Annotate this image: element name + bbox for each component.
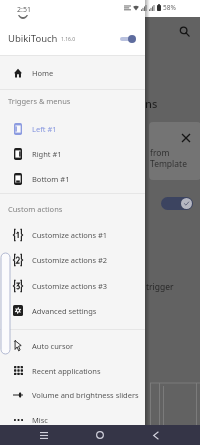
button[interactable] — [161, 197, 193, 210]
staticText: Left #1 — [32, 124, 57, 134]
button[interactable]: Auto cursor — [0, 333, 145, 358]
staticText: Home — [32, 68, 54, 78]
staticText: Recent applications — [32, 366, 101, 376]
button[interactable]: Close — [179, 131, 192, 144]
button[interactable]: Volume and brightness sliders — [0, 382, 145, 407]
staticText: Auto cursor — [32, 341, 74, 351]
button[interactable]: Customize actions #2 — [0, 247, 145, 272]
button[interactable]: Left #1 — [0, 116, 145, 141]
staticText: Customize actions #2 — [32, 255, 108, 265]
staticText: Custom actions — [8, 204, 63, 214]
button[interactable]: Misc — [0, 407, 145, 432]
button[interactable]: Advanced settings — [0, 298, 145, 323]
button[interactable]: Home — [0, 60, 145, 85]
button[interactable]: Search — [176, 23, 192, 39]
staticText: Volume and brightness sliders — [32, 390, 139, 400]
button[interactable]: Home — [90, 425, 110, 445]
button[interactable]: Close — [149, 122, 200, 180]
button[interactable]: Recent applications — [0, 358, 145, 383]
staticText: from Template — [150, 147, 187, 169]
staticText: Right #1 — [32, 149, 62, 159]
button[interactable]: Recent apps — [34, 425, 54, 445]
staticText: UbikiTouch — [8, 32, 58, 45]
staticText: Customize actions #1 — [32, 230, 108, 240]
staticText: 2:51 — [17, 5, 31, 15]
button[interactable]: Right #1 — [0, 141, 145, 166]
staticText: Advanced settings — [32, 306, 97, 316]
staticText: Customize actions #3 — [32, 281, 108, 291]
staticText: Misc — [32, 415, 48, 425]
staticText: trigger — [146, 281, 174, 293]
button[interactable]: Bottom #1 — [0, 166, 145, 191]
button[interactable]: Enable UbikiTouch — [120, 33, 136, 45]
button[interactable]: Customize actions #1 — [0, 222, 145, 247]
staticText: 58% — [163, 3, 176, 12]
staticText: Bottom #1 — [32, 174, 70, 184]
button[interactable]: Customize actions #3 — [0, 273, 145, 298]
staticText: 1.16.0 — [61, 36, 76, 43]
staticText: Triggers & menus — [8, 96, 71, 106]
button[interactable]: Back — [146, 425, 166, 445]
staticText: ns — [145, 96, 158, 111]
